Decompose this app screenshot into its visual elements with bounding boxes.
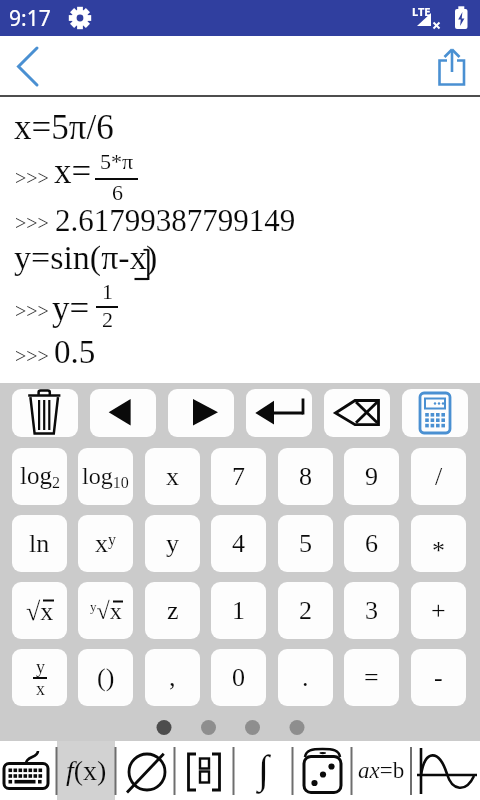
staticText: z [167, 596, 179, 625]
staticText: * [432, 536, 445, 565]
staticText: = [364, 663, 379, 692]
button[interactable]: . [278, 649, 333, 706]
button[interactable]: - [411, 649, 466, 706]
button[interactable] [324, 389, 390, 437]
button[interactable]: 2 [278, 582, 333, 639]
button[interactable] [402, 389, 468, 437]
staticText: 4 [232, 529, 245, 558]
staticText: x= [54, 152, 92, 191]
button[interactable] [175, 741, 233, 800]
staticText: 2 [299, 596, 312, 625]
staticText: >>> [15, 212, 49, 234]
button[interactable]: log10 [78, 448, 133, 505]
staticText: 5*π [100, 149, 134, 173]
button[interactable] [116, 741, 174, 800]
button[interactable]: 4 [211, 515, 266, 572]
staticText: log2 [20, 462, 60, 491]
staticText: y [36, 657, 45, 677]
staticText: ln [29, 529, 50, 558]
button[interactable]: / [411, 448, 466, 505]
staticText: x [36, 679, 45, 699]
button[interactable]: y [12, 649, 67, 706]
staticText: - [434, 663, 443, 692]
staticText: 0.5 [54, 334, 96, 371]
button[interactable]: ax=b [352, 741, 411, 800]
button[interactable]: y√x [78, 582, 133, 639]
staticText: log10 [82, 463, 129, 491]
staticText: 9:17 [9, 4, 51, 33]
button[interactable]: f(x) [57, 741, 115, 800]
button[interactable]: ∫ [234, 741, 292, 800]
button[interactable]: x [145, 448, 200, 505]
staticText: 2 [102, 307, 113, 331]
button[interactable] [12, 389, 78, 437]
button[interactable] [293, 741, 351, 800]
button[interactable] [68, 6, 92, 30]
button[interactable]: 9 [344, 448, 399, 505]
button[interactable]: 5 [278, 515, 333, 572]
staticText: 6 [112, 180, 123, 204]
button[interactable]: xy [78, 515, 133, 572]
button[interactable]: () [78, 649, 133, 706]
staticText: 3 [365, 596, 378, 625]
staticText: f(x) [66, 755, 107, 786]
button[interactable]: ln [12, 515, 67, 572]
staticText: () [97, 663, 115, 692]
staticText: √x [26, 597, 54, 626]
staticText: x=5π/6 [14, 108, 114, 147]
staticText: LTE [412, 4, 431, 19]
staticText: 5 [299, 529, 312, 558]
button[interactable]: 3 [344, 582, 399, 639]
button[interactable] [8, 37, 48, 95]
staticText: / [435, 462, 443, 491]
button[interactable]: √x [12, 582, 67, 639]
button[interactable] [90, 389, 156, 437]
button[interactable]: , [145, 649, 200, 706]
staticText: y [166, 529, 179, 558]
staticText: ax=b [358, 758, 405, 783]
button[interactable] [168, 389, 234, 437]
staticText: . [302, 663, 309, 692]
button[interactable]: 0 [211, 649, 266, 706]
button[interactable]: 7 [211, 448, 266, 505]
staticText: 2.61799387799149 [55, 203, 296, 237]
staticText: 6 [365, 529, 378, 558]
staticText: y√x [90, 598, 122, 625]
staticText: 8 [299, 462, 312, 491]
staticText: >>> [15, 167, 49, 189]
staticText: x [166, 462, 179, 491]
staticText: 9 [365, 462, 378, 491]
staticText: 7 [232, 462, 245, 491]
button[interactable] [246, 389, 312, 437]
staticText: >>> [15, 345, 49, 367]
staticText: y= [52, 289, 90, 328]
button[interactable] [432, 44, 472, 90]
staticText: 1 [232, 596, 245, 625]
button[interactable] [0, 741, 56, 800]
button[interactable]: 8 [278, 448, 333, 505]
staticText: y=sin(π-x [14, 239, 147, 277]
button[interactable]: + [411, 582, 466, 639]
button[interactable] [411, 741, 480, 800]
button[interactable]: 6 [344, 515, 399, 572]
staticText: ) [146, 239, 158, 277]
staticText: xy [95, 529, 116, 558]
button[interactable]: z [145, 582, 200, 639]
staticText: , [169, 663, 176, 692]
staticText: 1 [102, 279, 113, 303]
staticText: >>> [15, 300, 49, 322]
staticText: ∫ [258, 747, 269, 791]
button[interactable]: * [411, 515, 466, 572]
button[interactable]: y [145, 515, 200, 572]
staticText: + [431, 596, 446, 625]
button[interactable]: log2 [12, 448, 67, 505]
staticText: 0 [232, 663, 245, 692]
button[interactable]: = [344, 649, 399, 706]
button[interactable]: 1 [211, 582, 266, 639]
